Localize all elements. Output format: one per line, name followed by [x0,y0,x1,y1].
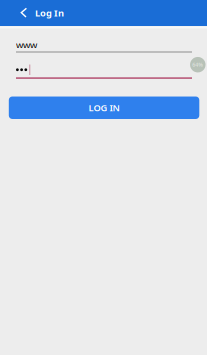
button[interactable]: Back [0,0,35,26]
button[interactable]: www [16,27,191,53]
staticText: Log In [35,7,64,19]
button[interactable]: LOG IN [9,96,199,119]
button[interactable]: Log In [35,0,64,26]
staticText: 64% [192,61,203,68]
staticText: www [16,39,37,51]
button[interactable] [16,53,191,79]
staticText: LOG IN [88,102,119,114]
